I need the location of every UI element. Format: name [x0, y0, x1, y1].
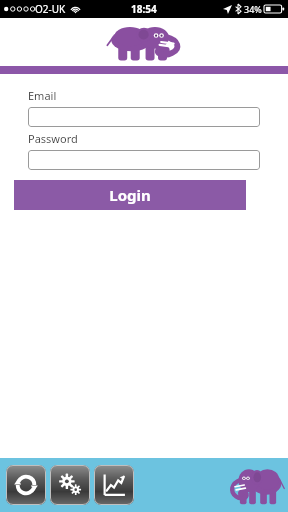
button[interactable]: Settings: [50, 465, 90, 505]
staticText: O2-UK: [35, 2, 66, 16]
button[interactable]: Login: [14, 180, 246, 210]
staticText: 34%: [244, 3, 262, 15]
button[interactable]: [28, 107, 260, 127]
staticText: Login: [109, 185, 151, 205]
staticText: Password: [28, 131, 78, 146]
staticText: 18:54: [131, 2, 157, 16]
button[interactable]: Statistics: [94, 465, 134, 505]
staticText: Email: [28, 88, 57, 103]
button[interactable]: [28, 150, 260, 170]
button[interactable]: Refresh: [6, 465, 46, 505]
